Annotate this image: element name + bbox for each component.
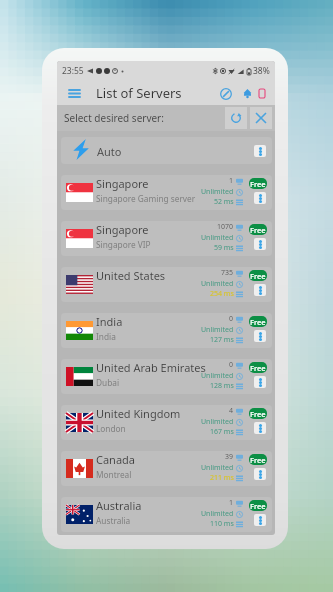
staticText: 0	[229, 314, 234, 324]
button[interactable]: Free	[249, 454, 267, 465]
button[interactable]: India	[61, 313, 272, 348]
staticText: Australia	[96, 515, 131, 526]
button[interactable]: Notifications	[239, 85, 255, 101]
staticText: Canada	[96, 452, 136, 467]
staticText: List of Servers	[96, 84, 182, 102]
staticText: 4	[229, 406, 234, 416]
button[interactable]: More options	[254, 330, 266, 342]
staticText: 1	[229, 176, 234, 186]
staticText: Free	[250, 501, 266, 511]
button[interactable]: Australia	[61, 497, 272, 532]
staticText: Singapore VIP	[96, 239, 151, 250]
staticText: Free	[250, 179, 266, 189]
button[interactable]: United Arab Emirates	[61, 359, 272, 394]
button[interactable]: Refresh	[225, 107, 247, 129]
button[interactable]: Close	[250, 107, 272, 129]
staticText: 211 ms	[210, 473, 234, 483]
button[interactable]: United States	[61, 267, 272, 302]
button[interactable]: More options	[254, 145, 266, 157]
staticText: Unlimited	[201, 279, 234, 289]
staticText: 1070	[217, 222, 234, 232]
staticText: 254 ms	[210, 289, 234, 299]
staticText: Free	[250, 455, 266, 465]
button[interactable]: More options	[254, 192, 266, 204]
staticText: Free	[250, 363, 266, 373]
staticText: Unlimited	[201, 417, 234, 427]
staticText: 23:55	[62, 65, 84, 77]
staticText: India	[96, 331, 116, 342]
staticText: 167 ms	[210, 427, 234, 437]
staticText: India	[96, 314, 123, 329]
staticText: Unlimited	[201, 371, 234, 381]
button[interactable]: Free	[249, 362, 267, 373]
staticText: Auto	[97, 144, 122, 159]
button[interactable]: Auto	[61, 137, 272, 164]
button[interactable]: Singapore	[61, 221, 272, 256]
button[interactable]: Free	[249, 500, 267, 511]
button[interactable]: More options	[254, 284, 266, 296]
staticText: Free	[250, 317, 266, 327]
button[interactable]: Free	[249, 316, 267, 327]
button[interactable]: More options	[254, 468, 266, 480]
staticText: 0	[229, 360, 234, 370]
button[interactable]: More options	[254, 422, 266, 434]
staticText: Australia	[96, 498, 142, 513]
button[interactable]: Menu	[64, 83, 84, 103]
staticText: Unlimited	[201, 325, 234, 335]
staticText: 1	[229, 498, 234, 508]
button[interactable]: Badge	[256, 87, 268, 99]
button[interactable]: More options	[254, 376, 266, 388]
staticText: Unlimited	[201, 233, 234, 243]
staticText: Dubai	[96, 377, 120, 388]
staticText: 735	[221, 268, 234, 278]
button[interactable]: Disconnected	[216, 84, 235, 103]
staticText: Free	[250, 225, 266, 235]
staticText: Singapore	[96, 176, 149, 191]
staticText: United Kingdom	[96, 406, 181, 421]
staticText: Free	[250, 409, 266, 419]
staticText: 39	[225, 452, 234, 462]
staticText: Singapore	[96, 222, 149, 237]
button[interactable]: Canada	[61, 451, 272, 486]
button[interactable]: United Kingdom	[61, 405, 272, 440]
staticText: 59 ms	[214, 243, 234, 253]
staticText: United Arab Emirates	[96, 360, 206, 375]
button[interactable]: Free	[249, 270, 267, 281]
button[interactable]: Free	[249, 408, 267, 419]
staticText: London	[96, 423, 126, 434]
button[interactable]: Free	[249, 178, 267, 189]
button[interactable]: Free	[249, 224, 267, 235]
staticText: Select desired server:	[64, 111, 164, 125]
staticText: Unlimited	[201, 509, 234, 519]
button[interactable]: Singapore	[61, 175, 272, 210]
button[interactable]: More options	[254, 514, 266, 526]
staticText: 128 ms	[210, 381, 234, 391]
staticText: Montreal	[96, 469, 132, 480]
staticText: 127 ms	[210, 335, 234, 345]
staticText: Unlimited	[201, 187, 234, 197]
button[interactable]: More options	[254, 238, 266, 250]
staticText: Singapore Gaming server	[96, 193, 196, 204]
staticText: Free	[250, 271, 266, 281]
staticText: 110 ms	[210, 519, 234, 529]
staticText: Unlimited	[201, 463, 234, 473]
staticText: United States	[96, 268, 166, 283]
staticText: 52 ms	[214, 197, 234, 207]
staticText: 38%	[253, 65, 270, 77]
